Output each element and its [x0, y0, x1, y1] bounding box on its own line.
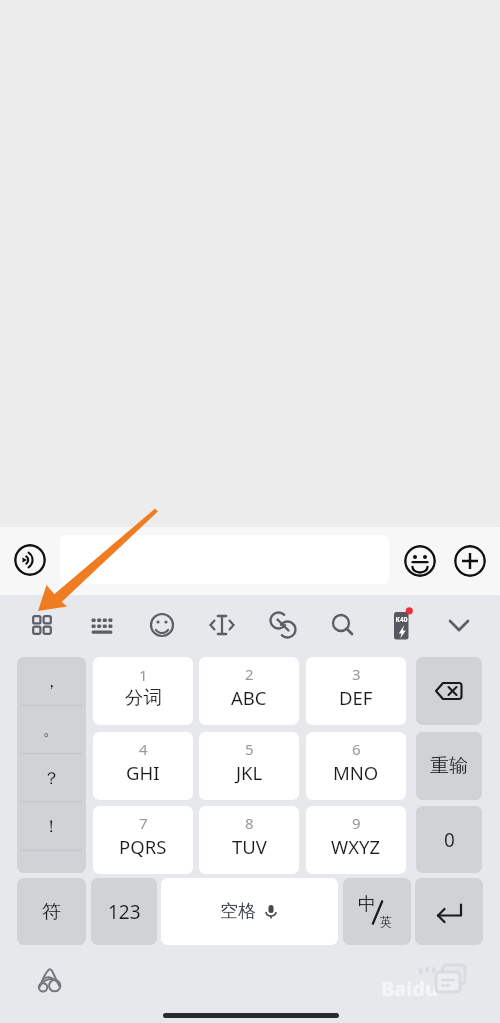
button[interactable]: Symbols: [17, 878, 86, 945]
staticText: PQRS: [119, 834, 167, 859]
staticText: 符: [42, 900, 61, 924]
staticText: 1: [139, 665, 148, 685]
button[interactable]: 。: [17, 705, 86, 753]
staticText: 重输: [430, 754, 468, 778]
staticText: 中: [358, 893, 376, 916]
button[interactable]: Emoji: [404, 545, 436, 577]
staticText: JKL: [236, 760, 263, 785]
button[interactable]: [60, 535, 389, 584]
staticText: K40: [394, 615, 409, 624]
staticText: 英: [380, 914, 392, 929]
button[interactable]: Add: [454, 545, 486, 577]
staticText: ？: [43, 768, 60, 789]
button[interactable]: 7: [93, 806, 193, 874]
button[interactable]: 6: [306, 732, 406, 800]
button[interactable]: Link: [263, 605, 303, 645]
staticText: 9: [352, 813, 361, 833]
button[interactable]: Keyboard: [82, 605, 122, 645]
button[interactable]: Edit cursor: [202, 605, 242, 645]
button[interactable]: 8: [199, 806, 299, 874]
staticText: 6: [352, 739, 361, 759]
button[interactable]: 1: [93, 657, 193, 725]
button[interactable]: Enter: [415, 878, 483, 945]
staticText: 0: [444, 827, 455, 853]
button[interactable]: 9: [306, 806, 406, 874]
staticText: Baidu: [381, 975, 438, 1002]
staticText: MNO: [333, 760, 379, 785]
button[interactable]: ！: [17, 802, 86, 850]
staticText: 。: [43, 719, 60, 740]
button[interactable]: ，: [17, 657, 86, 705]
button[interactable]: 123: [91, 878, 157, 945]
staticText: 4: [139, 739, 148, 759]
staticText: 123: [108, 899, 141, 925]
button[interactable]: Search: [323, 605, 363, 645]
staticText: 分词: [125, 686, 162, 709]
staticText: 8: [245, 813, 254, 833]
staticText: DEF: [339, 685, 373, 710]
button[interactable]: Chinese English toggle: [343, 878, 411, 945]
button[interactable]: 3: [306, 657, 406, 725]
staticText: 3: [352, 664, 361, 684]
staticText: WXYZ: [331, 834, 381, 859]
staticText: TUV: [232, 834, 267, 859]
staticText: ！: [43, 816, 60, 837]
button[interactable]: Voice input: [14, 544, 46, 576]
button[interactable]: 空格: [161, 878, 338, 945]
button[interactable]: Collapse keyboard: [439, 605, 479, 645]
staticText: 空格: [220, 900, 256, 923]
button[interactable]: ？: [17, 754, 86, 802]
staticText: 2: [245, 664, 254, 684]
button[interactable]: 4: [93, 732, 193, 800]
button[interactable]: 5: [199, 732, 299, 800]
button[interactable]: Emoticons: [142, 605, 182, 645]
button[interactable]: Re-enter: [416, 732, 482, 800]
staticText: ABC: [231, 685, 267, 710]
button[interactable]: Grid: [22, 605, 62, 645]
button[interactable]: 0: [416, 806, 482, 873]
button[interactable]: Backspace: [416, 657, 482, 725]
button[interactable]: Device: [386, 605, 426, 645]
button[interactable]: Input method logo: [38, 968, 62, 995]
staticText: 7: [139, 813, 148, 833]
staticText: ，: [43, 671, 60, 692]
button[interactable]: 2: [199, 657, 299, 725]
staticText: GHI: [126, 760, 160, 785]
staticText: 5: [245, 739, 254, 759]
